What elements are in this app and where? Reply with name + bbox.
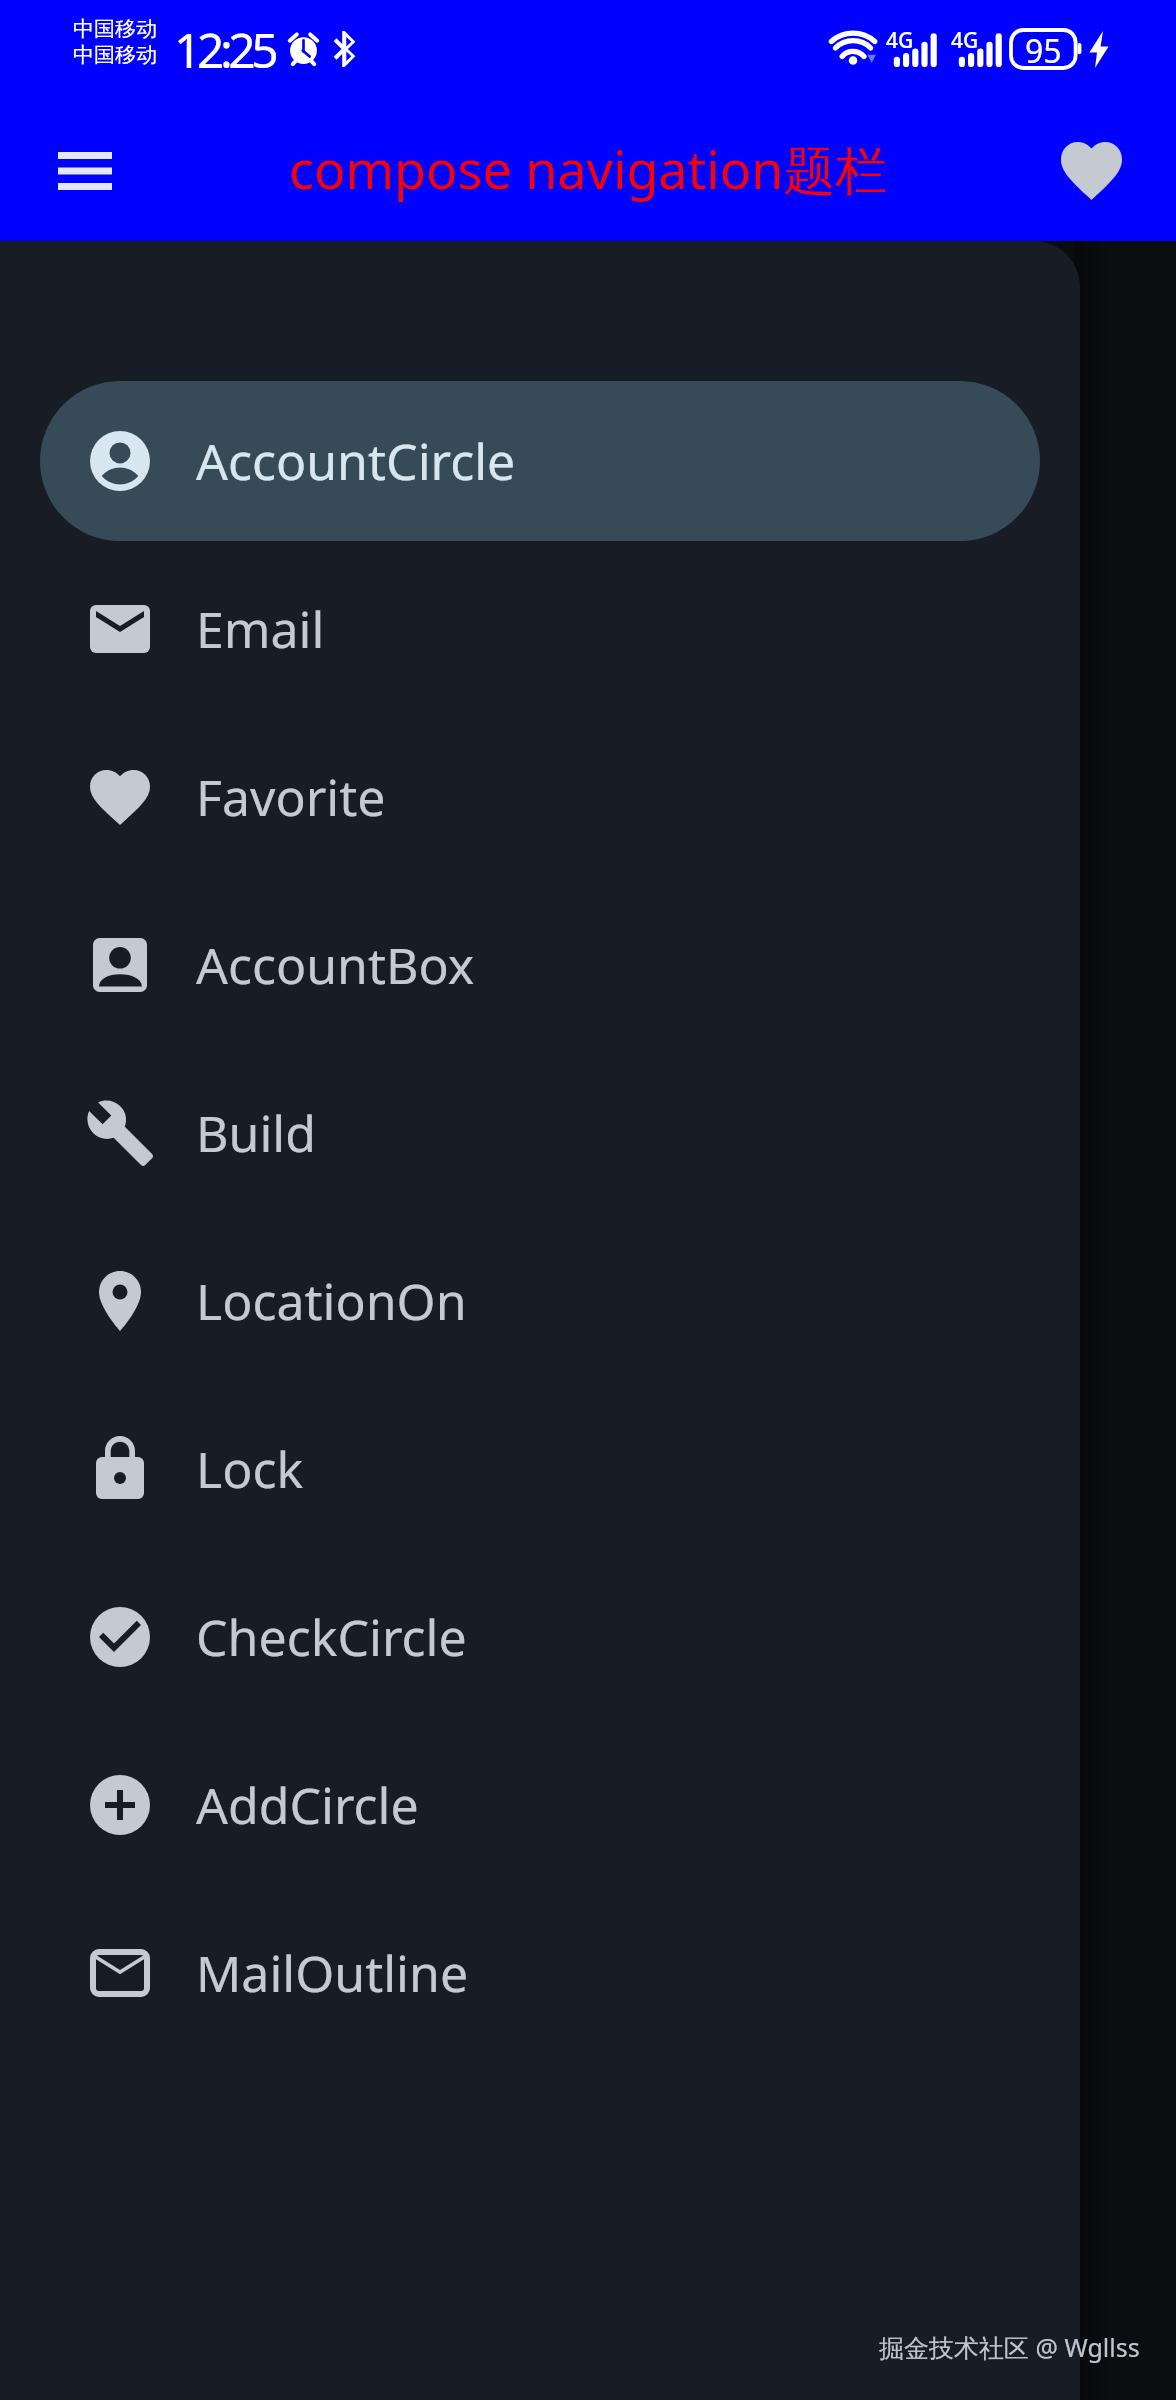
- staticText: 4G: [886, 26, 914, 55]
- staticText: AccountBox: [196, 931, 475, 999]
- staticText: Email: [196, 595, 325, 663]
- staticText: LocationOn: [196, 1267, 467, 1335]
- staticText: compose navigation题栏: [289, 133, 888, 204]
- button[interactable]: AddCircle: [40, 1725, 1040, 1885]
- staticText: MailOutline: [196, 1939, 469, 2007]
- staticText: 掘金技术社区 @ Wgllss: [879, 2330, 1140, 2364]
- button[interactable]: AccountBox: [40, 885, 1040, 1045]
- button[interactable]: LocationOn: [40, 1221, 1040, 1381]
- staticText: AddCircle: [196, 1771, 419, 1839]
- button[interactable]: Build: [40, 1053, 1040, 1213]
- staticText: 4G: [951, 26, 979, 55]
- button[interactable]: Lock: [40, 1389, 1040, 1549]
- button[interactable]: Open navigation menu: [30, 116, 140, 226]
- staticText: CheckCircle: [196, 1603, 467, 1671]
- staticText: Favorite: [196, 763, 386, 831]
- staticText: Build: [196, 1099, 316, 1167]
- button[interactable]: Email: [40, 549, 1040, 709]
- staticText: 95: [1025, 29, 1062, 67]
- staticText: 中国移动: [73, 16, 157, 42]
- staticText: Lock: [196, 1435, 304, 1503]
- staticText: 12:25: [174, 17, 275, 82]
- button[interactable]: CheckCircle: [40, 1557, 1040, 1717]
- button[interactable]: Favorite: [40, 717, 1040, 877]
- staticText: AccountCircle: [196, 427, 516, 495]
- button[interactable]: Favorite: [1036, 116, 1146, 226]
- button[interactable]: AccountCircle: [40, 381, 1040, 541]
- button[interactable]: MailOutline: [40, 1893, 1040, 2053]
- staticText: 中国移动: [73, 42, 157, 68]
